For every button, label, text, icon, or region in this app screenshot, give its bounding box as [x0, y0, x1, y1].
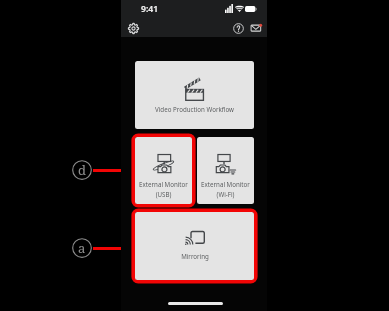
button[interactable]: Video Production Workflow — [135, 61, 254, 129]
button[interactable]: Messages — [249, 21, 263, 35]
staticText: External Monitor (USB) — [139, 180, 188, 199]
staticText: 9:41 — [141, 3, 159, 15]
button[interactable]: External Monitor (Wi-Fi) — [197, 137, 254, 204]
button[interactable]: Mirroring — [135, 212, 254, 280]
button[interactable]: Settings — [126, 21, 140, 35]
staticText: Mirroring — [181, 252, 209, 260]
staticText: a — [78, 239, 86, 257]
button[interactable]: Help — [231, 21, 245, 35]
button[interactable]: External Monitor (USB) — [135, 137, 192, 204]
staticText: External Monitor (Wi-Fi) — [201, 180, 250, 199]
staticText: Video Production Workflow — [155, 105, 234, 113]
staticText: d — [78, 161, 86, 179]
